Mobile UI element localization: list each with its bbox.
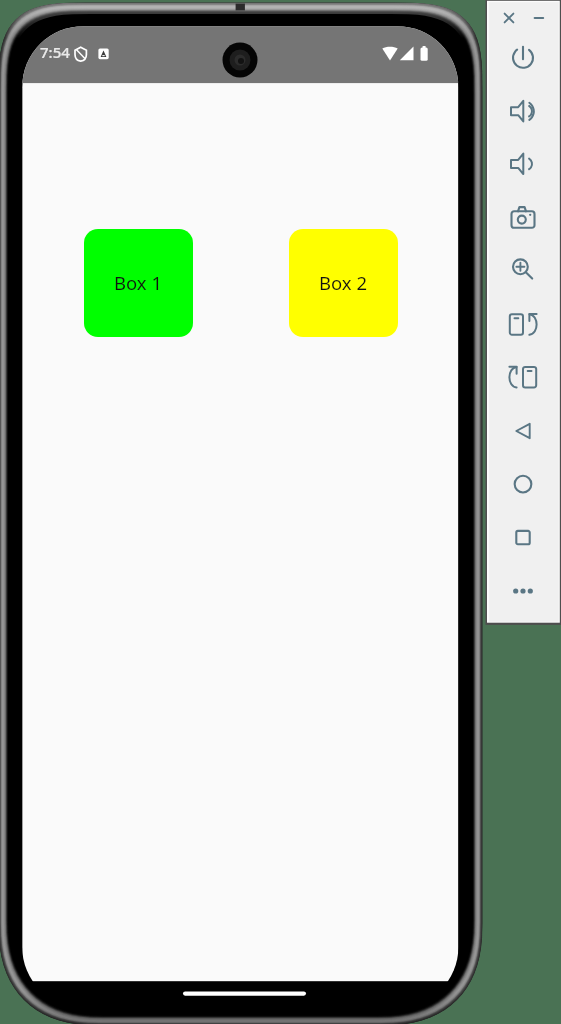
button[interactable]: Box 2 xyxy=(289,229,398,337)
button[interactable]: Take screenshot xyxy=(505,200,541,236)
staticText: 7:54 xyxy=(40,42,70,62)
button[interactable]: Minimize xyxy=(528,7,550,29)
button[interactable]: More xyxy=(505,573,541,609)
button[interactable]: Volume down xyxy=(505,146,541,182)
staticText: Box 1 xyxy=(114,270,163,295)
button[interactable]: Back xyxy=(505,412,541,448)
button[interactable]: Overview xyxy=(505,519,541,555)
button[interactable]: Home xyxy=(505,466,541,502)
button[interactable]: Rotate right xyxy=(505,359,541,395)
staticText: Box 2 xyxy=(319,270,368,295)
button[interactable]: Close xyxy=(498,7,520,29)
button[interactable]: Rotate left xyxy=(505,306,541,342)
button[interactable]: Box 1 xyxy=(84,229,193,337)
button[interactable]: Power xyxy=(505,40,541,76)
button[interactable]: Zoom xyxy=(505,251,541,287)
button[interactable]: Volume up xyxy=(505,93,541,129)
